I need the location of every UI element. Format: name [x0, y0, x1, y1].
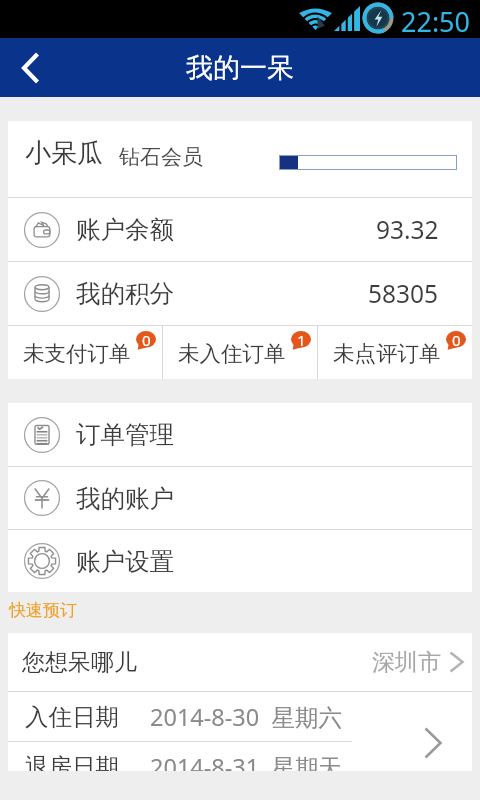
button[interactable]: Back [0, 38, 60, 97]
staticText: 我的账户 [76, 483, 174, 514]
button[interactable]: 您想呆哪儿 [8, 633, 472, 691]
staticText: 2014-8-30 星期六 [150, 701, 342, 733]
button[interactable]: 账户设置 [8, 530, 472, 592]
staticText: 快速预订 [9, 600, 77, 621]
button[interactable]: 未入住订单 [163, 326, 317, 379]
button[interactable]: 订单管理 [8, 403, 472, 466]
staticText: 钻石会员 [119, 144, 203, 170]
button[interactable]: 未支付订单 [8, 326, 162, 379]
staticText: 未入住订单 [178, 340, 286, 367]
staticText: 订单管理 [76, 419, 174, 450]
staticText: 58305 [368, 277, 439, 310]
staticText: 22:50 [401, 3, 471, 40]
button[interactable]: 入住日期 [8, 692, 472, 771]
staticText: 退房日期 [25, 752, 119, 771]
staticText: 未支付订单 [23, 340, 131, 367]
staticText: 深圳市 [372, 648, 441, 677]
staticText: 账户余额 [76, 214, 174, 245]
staticText: 2014-8-31 星期天 [150, 751, 342, 771]
button[interactable]: 我的账户 [8, 467, 472, 529]
staticText: 您想呆哪儿 [22, 648, 137, 677]
staticText: 0 [142, 330, 151, 348]
staticText: 小呆瓜 [25, 137, 103, 170]
staticText: 账户设置 [76, 546, 174, 577]
staticText: 我的积分 [76, 278, 174, 309]
staticText: 0 [452, 330, 461, 348]
staticText: 93.32 [376, 213, 439, 246]
staticText: 入住日期 [25, 702, 119, 732]
staticText: 我的一呆 [186, 51, 294, 85]
staticText: 未点评订单 [333, 340, 441, 367]
button[interactable]: 未点评订单 [318, 326, 472, 379]
button[interactable]: 我的积分 [8, 262, 472, 325]
button[interactable]: 账户余额 [8, 198, 472, 261]
staticText: 1 [297, 330, 306, 348]
